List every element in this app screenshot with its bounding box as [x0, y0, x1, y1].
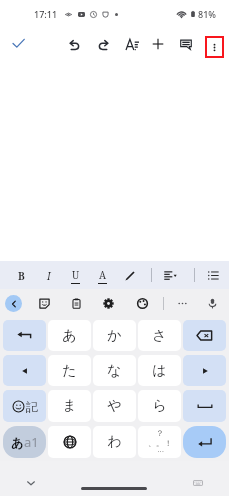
button[interactable]: あ [3, 426, 46, 458]
button[interactable]: U [62, 262, 89, 289]
button[interactable]: More [171, 292, 193, 314]
staticText: A [99, 268, 107, 282]
staticText: 、。！ [148, 438, 172, 448]
staticText: ま [62, 397, 77, 415]
button[interactable] [183, 320, 226, 351]
button[interactable]: ま [48, 390, 91, 422]
button[interactable]: Theme [136, 297, 148, 309]
button[interactable]: さ [138, 320, 181, 351]
button[interactable]: わ [93, 426, 136, 458]
button[interactable]: Settings [102, 297, 114, 309]
button[interactable]: More options [205, 36, 224, 58]
button[interactable]: B [8, 262, 35, 289]
staticText: a1 [24, 433, 39, 451]
button[interactable]: Undo [61, 31, 87, 57]
button[interactable]: Format [119, 31, 145, 57]
button[interactable] [48, 426, 91, 458]
staticText: ら [152, 397, 167, 415]
staticText: あ [62, 327, 77, 345]
staticText: ⋯ [157, 448, 164, 456]
staticText: B [18, 269, 25, 283]
button[interactable] [183, 355, 226, 386]
button[interactable]: Switch keyboard [188, 473, 208, 493]
staticText: は [152, 362, 167, 380]
button[interactable] [183, 390, 226, 422]
button[interactable]: な [93, 355, 136, 386]
staticText: U [72, 268, 80, 282]
button[interactable]: あ [48, 320, 91, 351]
staticText: あ [11, 435, 24, 450]
staticText: I [47, 269, 51, 283]
button[interactable]: ら [138, 390, 181, 422]
button[interactable] [3, 355, 46, 386]
button[interactable]: Clipboard [70, 297, 82, 309]
staticText: 記 [26, 399, 38, 414]
button[interactable]: Done [5, 30, 32, 57]
staticText: ？ [156, 428, 164, 438]
staticText: 81% [198, 8, 216, 20]
button[interactable]: か [93, 320, 136, 351]
button[interactable]: A [89, 262, 116, 289]
button[interactable]: Back [5, 295, 22, 312]
staticText: な [107, 362, 122, 380]
button[interactable] [183, 426, 226, 458]
staticText: さ [152, 327, 167, 345]
staticText: わ [107, 433, 122, 451]
staticText: か [107, 327, 122, 345]
staticText: 17:11 [34, 8, 58, 20]
staticText: た [62, 362, 77, 380]
button[interactable]: Add [145, 31, 171, 57]
button[interactable]: Alignment [157, 262, 184, 289]
button[interactable]: Stickers [38, 297, 50, 309]
button[interactable]: Redo [90, 31, 116, 57]
button[interactable]: Comment [173, 31, 199, 57]
staticText: や [107, 397, 122, 415]
button[interactable]: や [93, 390, 136, 422]
button[interactable]: Bulleted list [200, 262, 227, 289]
button[interactable] [3, 320, 46, 351]
button[interactable]: Highlight [116, 262, 143, 289]
button[interactable]: I [35, 262, 62, 289]
button[interactable]: 記 [3, 390, 46, 422]
button[interactable]: は [138, 355, 181, 386]
button[interactable]: Voice input [201, 292, 223, 314]
button[interactable]: Hide keyboard [21, 473, 41, 493]
button[interactable]: ？ [138, 426, 181, 458]
button[interactable]: た [48, 355, 91, 386]
